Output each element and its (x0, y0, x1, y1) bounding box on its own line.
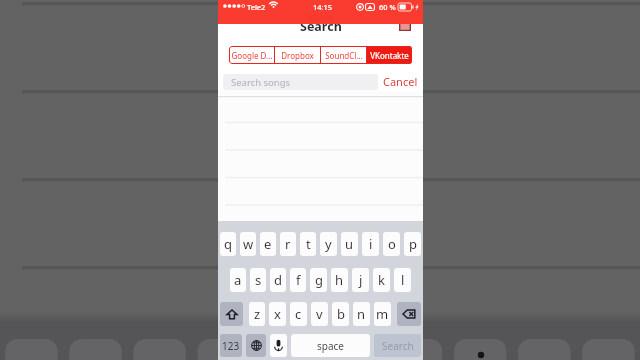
staticText: Google D... (231, 50, 273, 61)
staticText: c (295, 305, 302, 323)
staticText: a (234, 271, 242, 289)
staticText: Dropbox (281, 50, 314, 61)
staticText: 60 % (379, 2, 396, 12)
staticText: s (255, 271, 262, 289)
button[interactable]: z (249, 302, 265, 326)
button[interactable]: Dropbox (275, 46, 320, 64)
button[interactable]: i (362, 232, 379, 256)
staticText: Search songs (231, 76, 291, 89)
staticText: Search (300, 24, 342, 33)
button[interactable]: o (383, 232, 400, 256)
staticText: q (224, 235, 232, 253)
button[interactable]: b (332, 302, 349, 326)
staticText: 14:15 (313, 2, 332, 12)
button[interactable]: space (291, 334, 370, 357)
staticText: o (388, 235, 396, 253)
button[interactable]: 123 (220, 334, 242, 357)
button[interactable]: d (270, 268, 286, 292)
staticText: e (264, 235, 272, 253)
button[interactable]: VKontakte (367, 46, 412, 64)
staticText: x (274, 305, 281, 323)
staticText: z (254, 305, 261, 323)
staticText: p (409, 235, 417, 253)
staticText: d (274, 271, 282, 289)
button[interactable]: p (404, 232, 421, 256)
button[interactable]: k (373, 268, 390, 292)
staticText: v (316, 305, 323, 323)
button[interactable]: g (310, 268, 327, 292)
staticText: g (315, 271, 323, 289)
button[interactable]: y (320, 232, 337, 256)
staticText: l (401, 271, 405, 289)
staticText: 123 (222, 339, 240, 353)
staticText: b (337, 305, 345, 323)
button[interactable]: c (290, 302, 307, 326)
button[interactable]: Search songs (223, 74, 378, 90)
staticText: Search (382, 339, 414, 353)
staticText: f (296, 271, 301, 289)
button[interactable]: w (240, 232, 256, 256)
staticText: t (306, 235, 311, 253)
button[interactable]: a (230, 268, 246, 292)
button[interactable]: Edit (399, 24, 411, 31)
button[interactable]: f (290, 268, 306, 292)
staticText: VKontakte (370, 50, 409, 61)
staticText: space (317, 339, 344, 353)
button[interactable]: m (374, 302, 391, 326)
staticText: h (335, 271, 344, 289)
staticText: m (376, 305, 389, 323)
button[interactable]: Backspace (397, 302, 421, 326)
button[interactable]: n (353, 302, 370, 326)
staticText: j (359, 271, 363, 289)
staticText: u (345, 235, 354, 253)
button[interactable]: h (331, 268, 348, 292)
staticText: n (357, 305, 366, 323)
button[interactable]: q (220, 232, 236, 256)
button[interactable]: r (280, 232, 296, 256)
button[interactable]: v (311, 302, 328, 326)
staticText: i (369, 235, 373, 253)
staticText: k (378, 271, 385, 289)
staticText: Cancel (383, 74, 418, 89)
staticText: y (325, 235, 332, 253)
button[interactable]: SoundCl... (321, 46, 366, 64)
button[interactable]: Google D... (229, 46, 274, 64)
button[interactable]: s (250, 268, 266, 292)
staticText: r (285, 235, 291, 253)
button[interactable]: Search (374, 334, 421, 357)
button[interactable]: u (341, 232, 358, 256)
staticText: w (243, 235, 254, 253)
button[interactable]: e (260, 232, 276, 256)
button[interactable]: x (269, 302, 286, 326)
button[interactable]: Shift (220, 302, 243, 326)
button[interactable]: t (300, 232, 316, 256)
button[interactable]: j (352, 268, 369, 292)
button[interactable]: Next keyboard (246, 334, 266, 357)
button[interactable]: l (394, 268, 411, 292)
staticText: SoundCl... (325, 50, 363, 61)
button[interactable]: Dictate (270, 334, 287, 357)
staticText: Tele2 (247, 2, 266, 12)
button[interactable]: Cancel (381, 73, 419, 90)
